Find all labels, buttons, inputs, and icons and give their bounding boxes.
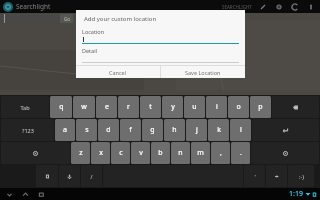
staticText: / [90, 173, 93, 180]
button[interactable]: More options [306, 2, 316, 12]
staticText: a [63, 125, 67, 135]
staticText: c [119, 148, 123, 158]
button[interactable]: Backspace [272, 96, 319, 118]
staticText: ?123 [22, 127, 34, 134]
button[interactable]: Refresh [290, 2, 300, 12]
button[interactable]: s [76, 119, 97, 141]
button[interactable]: i [206, 96, 227, 118]
button[interactable]: w [73, 96, 95, 118]
staticText: Go [64, 16, 70, 22]
staticText: y [171, 102, 175, 112]
button[interactable]: h [164, 119, 185, 141]
button[interactable]: Cancel [76, 66, 160, 78]
button[interactable]: z [71, 142, 90, 164]
staticText: k [217, 125, 221, 135]
button[interactable]: g [142, 119, 163, 141]
button[interactable]: t [140, 96, 161, 118]
staticText: SEARCHLIGHT [222, 4, 252, 10]
button[interactable]: q [50, 96, 72, 118]
button[interactable]: y [162, 96, 183, 118]
staticText: o [236, 102, 241, 112]
button[interactable]: Next [266, 165, 287, 187]
button[interactable]: m [191, 142, 210, 164]
button[interactable]: e [96, 96, 117, 118]
staticText: r [127, 102, 130, 112]
button[interactable]: x [91, 142, 110, 164]
staticText: i [216, 102, 218, 112]
staticText: ' [254, 173, 256, 180]
button[interactable]: j [186, 119, 207, 141]
staticText: g [150, 125, 155, 135]
button[interactable] [82, 55, 239, 63]
button[interactable]: / [81, 165, 102, 187]
staticText: j [196, 125, 198, 135]
staticText: s [85, 125, 89, 135]
button[interactable]: Shift [1, 142, 70, 164]
staticText: u [192, 102, 197, 112]
staticText: v [139, 148, 143, 158]
staticText: :-) [299, 173, 304, 180]
staticText: Add your custom location [84, 15, 157, 23]
button[interactable]: l [230, 119, 251, 141]
button[interactable]: Enter [252, 119, 319, 141]
button[interactable]: r [118, 96, 139, 118]
staticText: l [240, 125, 242, 135]
staticText: Searchlight [16, 2, 51, 11]
staticText: Cancel [109, 69, 127, 76]
button[interactable]: u [184, 96, 205, 118]
staticText: e [105, 102, 109, 112]
button[interactable]: Voice input [59, 165, 80, 187]
button[interactable]: f [120, 119, 141, 141]
staticText: n [178, 148, 183, 158]
staticText: p [258, 102, 263, 112]
button[interactable]: c [111, 142, 130, 164]
staticText: t [149, 102, 152, 112]
button[interactable]: Tab [1, 96, 49, 118]
staticText: w [81, 102, 87, 112]
staticText: d [106, 125, 111, 135]
button[interactable]: Back [4, 189, 14, 199]
staticText: Save Location [185, 69, 221, 76]
staticText: Tab [20, 104, 30, 111]
staticText: , [220, 148, 222, 158]
button[interactable]: o [228, 96, 249, 118]
button[interactable]: Home [20, 189, 30, 199]
staticText: Location [82, 28, 105, 35]
button[interactable]: v [131, 142, 150, 164]
button[interactable]: p [250, 96, 271, 118]
button[interactable]: :-) [288, 165, 314, 187]
button[interactable]: Edit [258, 2, 268, 12]
button[interactable]: a [55, 119, 75, 141]
button[interactable]: , [211, 142, 230, 164]
staticText: h [172, 125, 177, 135]
button[interactable]: Recent apps [36, 189, 46, 199]
staticText: m [197, 148, 204, 158]
button[interactable]: n [171, 142, 190, 164]
staticText: b [158, 148, 163, 158]
staticText: f [129, 125, 132, 135]
staticText: q [59, 102, 64, 112]
button[interactable]: ?123 [1, 119, 54, 141]
button[interactable]: . [231, 142, 250, 164]
button[interactable]: b [151, 142, 170, 164]
staticText: Detail [82, 47, 98, 54]
staticText: . [240, 148, 242, 158]
button[interactable] [2, 14, 58, 23]
staticText: x [99, 148, 103, 158]
button[interactable]: Shift [251, 142, 319, 164]
button[interactable]: k [208, 119, 229, 141]
button[interactable]: ' [244, 165, 265, 187]
staticText: 1:19 [289, 189, 303, 199]
button[interactable]: Settings [36, 165, 58, 187]
button[interactable]: Location [274, 2, 284, 12]
staticText: z [79, 148, 83, 158]
button[interactable] [82, 36, 239, 44]
button[interactable]: d [98, 119, 119, 141]
button[interactable]: Go [60, 14, 73, 23]
button[interactable]: Save Location [161, 66, 245, 78]
button[interactable]: App icon [3, 2, 13, 12]
